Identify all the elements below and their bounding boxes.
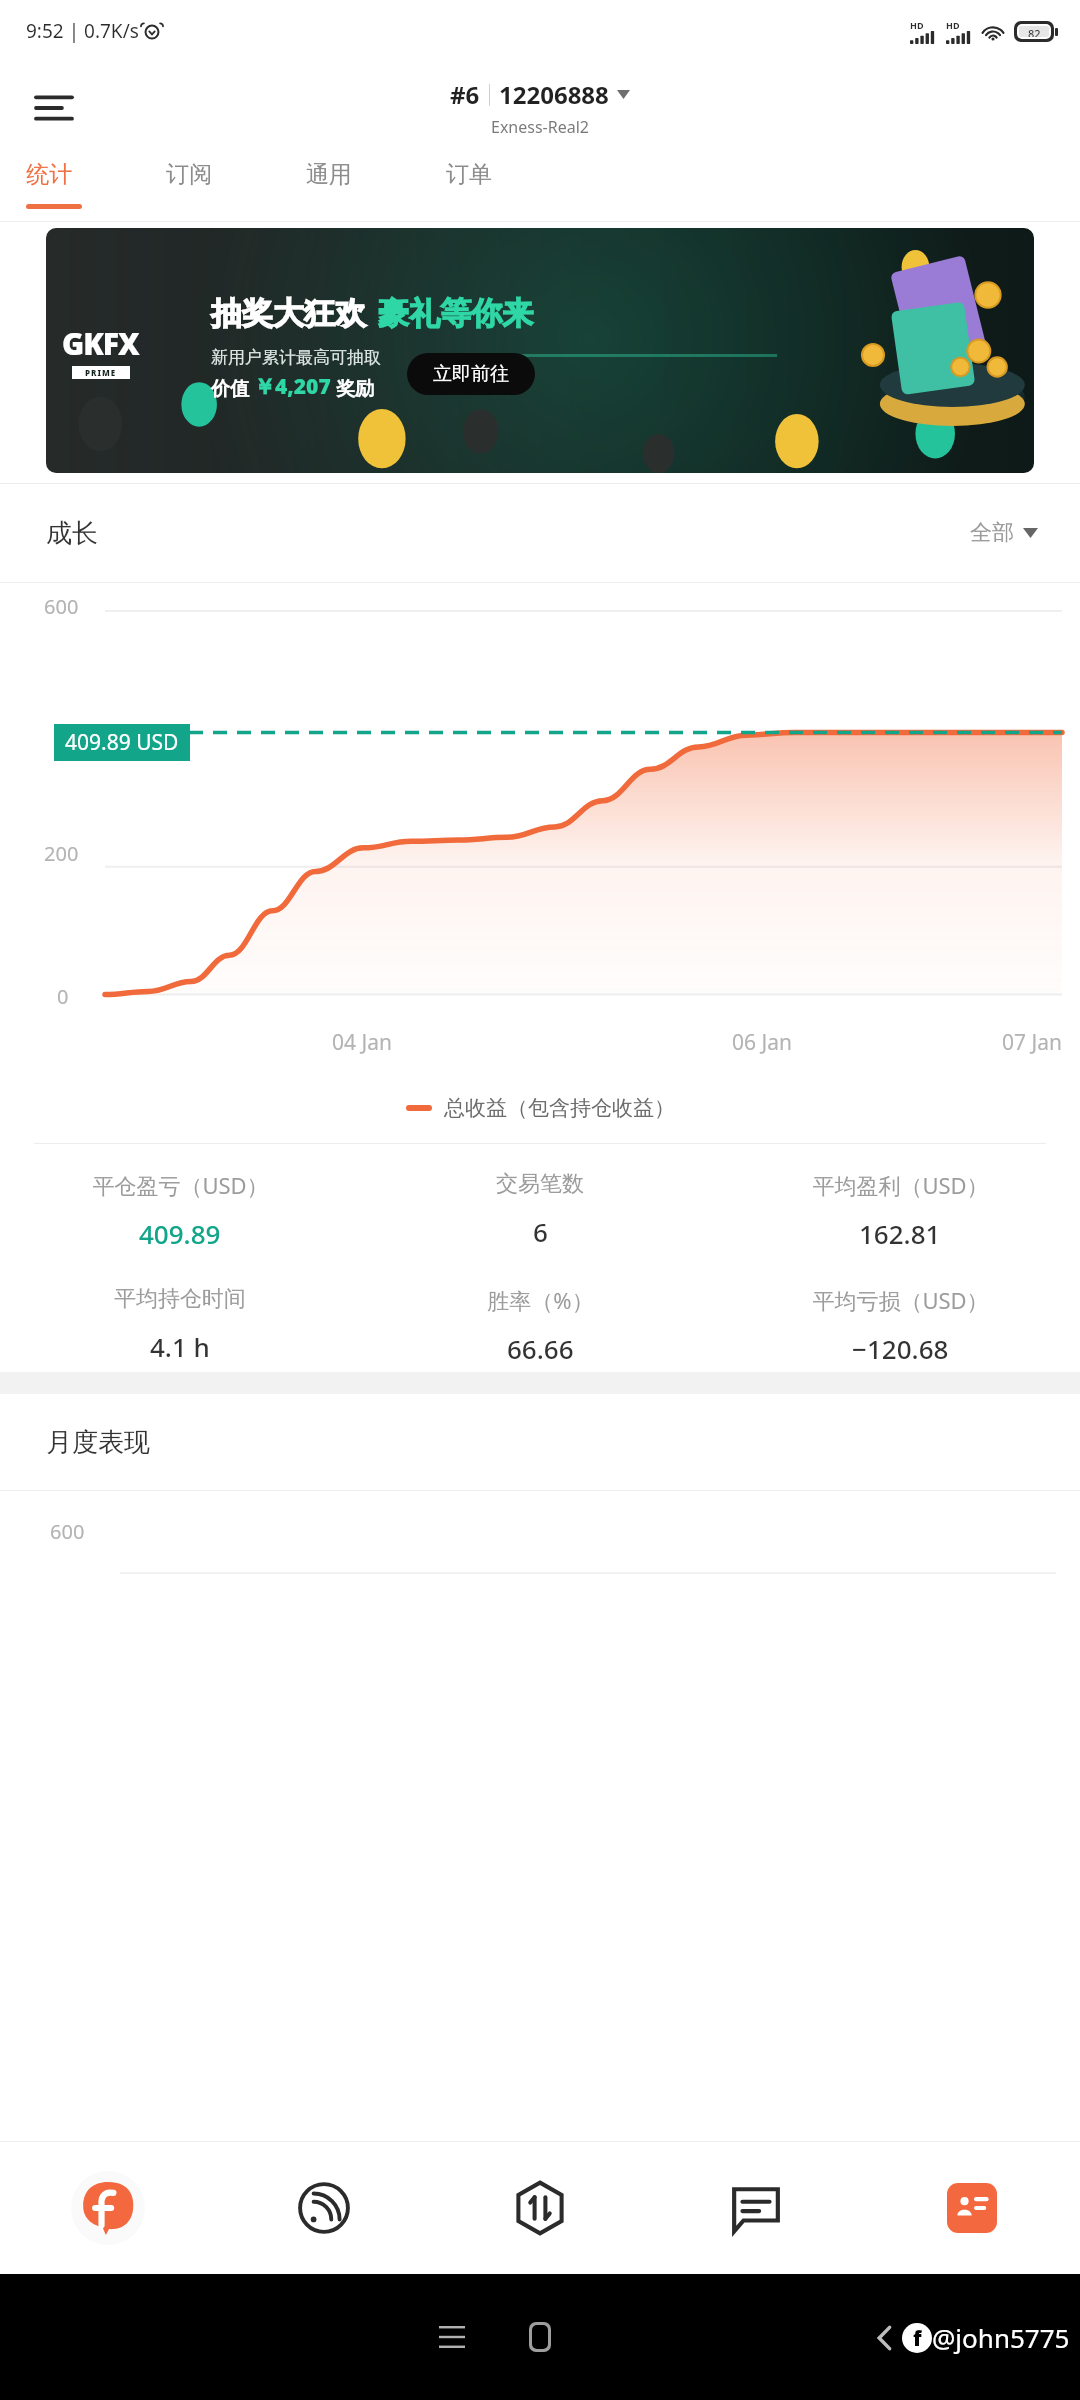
staticText: −120.68 [852,1331,949,1366]
staticText: 07 Jan [1002,1028,1062,1057]
staticText: 交易笔数 [496,1170,584,1198]
staticText: 平均亏损（USD） [812,1285,989,1315]
staticText: 新用户累计最高可抽取 [211,347,381,368]
button[interactable]: Trade [432,2142,648,2274]
staticText: 409.89 [139,1216,221,1251]
staticText: 600 [44,593,79,620]
staticText: GKFX [62,323,139,364]
staticText: @john5775 [932,2320,1070,2355]
staticText: 平均盈利（USD） [812,1170,989,1200]
button[interactable]: 订阅 [166,154,306,222]
button[interactable]: 月度表现 [0,1394,1080,1490]
staticText: 立即前往 [433,362,509,386]
button[interactable]: Menu [22,76,86,140]
button[interactable]: Messages [648,2142,864,2274]
button[interactable]: Home [495,2292,585,2382]
staticText: 162.81 [859,1216,941,1251]
button[interactable]: 通用 [306,154,446,222]
staticText: 订阅 [166,160,212,189]
staticText: f [913,2324,922,2353]
button[interactable]: Signals [216,2142,432,2274]
staticText: ￥4,207 [254,372,331,401]
staticText: 4.1 h [150,1329,210,1364]
staticText: 平仓盈亏（USD） [92,1170,269,1200]
staticText: 统计 [26,160,72,189]
staticText: HD [946,19,960,31]
staticText: 66.66 [507,1331,574,1366]
staticText: 82 [1028,26,1041,37]
staticText: 抽奖大狂欢 [211,294,366,333]
staticText: 价值 [211,375,254,401]
staticText: 通用 [306,160,352,189]
staticText: 全部 [970,519,1014,547]
staticText: 409.89 USD [65,728,179,757]
button[interactable]: #6 [450,78,630,138]
staticText: 0 [57,983,69,1010]
staticText: 月度表现 [46,1426,150,1459]
staticText: 总收益（包含持仓收益） [444,1095,675,1121]
staticText: PRIME [85,367,117,378]
button[interactable]: Recents [407,2292,497,2382]
button[interactable]: Home [0,2142,216,2274]
staticText: HD [910,19,924,31]
staticText: #6 [450,78,480,111]
staticText: 豪礼等你来 [378,294,533,333]
staticText: 平均持仓时间 [114,1285,246,1313]
staticText: 04 Jan [332,1028,392,1057]
button[interactable]: 统计 [26,154,166,222]
staticText: 12206888 [499,78,609,111]
button[interactable]: 成长 [0,484,1080,582]
staticText: 6 [533,1214,548,1249]
staticText: 订单 [446,160,492,189]
staticText: 9:52 | 0.7K/s [26,18,139,44]
button[interactable]: 立即前往 [407,353,535,395]
staticText: 06 Jan [732,1028,792,1057]
staticText: Exness-Real2 [491,116,589,138]
button[interactable]: GKFX [46,228,1034,473]
staticText: 600 [50,1518,85,1545]
staticText: 成长 [46,517,98,550]
button[interactable]: 订单 [446,154,586,222]
staticText: 200 [44,840,79,867]
button[interactable]: Profile [864,2142,1080,2274]
other: Back [876,2324,892,2352]
staticText: 胜率（%） [487,1285,594,1315]
staticText: 奖励 [331,375,374,401]
